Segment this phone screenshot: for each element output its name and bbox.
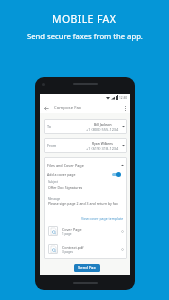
button[interactable]: More options: [121, 104, 129, 112]
button[interactable]: Contract.pdf: [48, 244, 124, 254]
staticText: 1 page: [62, 232, 72, 236]
staticText: Send Fax: [78, 265, 96, 271]
staticText: From: [47, 143, 57, 148]
button[interactable]: To: [44, 119, 127, 134]
staticText: Subject: [48, 180, 58, 184]
button[interactable]: Files and Cover Page: [44, 161, 127, 169]
button[interactable]: Add a cover page: [44, 170, 127, 178]
staticText: Bill Jackson: [94, 122, 112, 126]
staticText: Offer Doc Signatures: [48, 185, 83, 190]
button[interactable]: From: [44, 138, 127, 153]
button[interactable]: Cover Page: [48, 226, 124, 236]
staticText: +1 (800) 555-1234: [86, 127, 119, 132]
button[interactable]: Back: [42, 104, 50, 112]
staticText: MOBILE FAX: [52, 12, 117, 26]
staticText: Send secure faxes from the app.: [27, 31, 143, 41]
staticText: 3 pages: [62, 250, 73, 254]
staticText: Please sign page 2 and 3 and return by f…: [48, 201, 118, 206]
button[interactable]: View cover page template: [44, 215, 127, 222]
staticText: Add a cover page: [47, 172, 76, 177]
staticText: Ryan Wilkens: [92, 141, 113, 145]
staticText: View cover page template: [81, 216, 124, 221]
staticText: Files and Cover Page: [47, 163, 84, 168]
staticText: Contract.pdf: [62, 245, 84, 250]
staticText: Cover Page: [62, 227, 82, 232]
staticText: Compose Fax: [54, 104, 82, 110]
staticText: To: [47, 124, 52, 129]
staticText: 12:30: [119, 96, 128, 100]
button[interactable]: Send Fax: [74, 264, 100, 272]
staticText: Message: [48, 197, 61, 201]
staticText: +1 (619) 318-1234: [86, 146, 119, 151]
